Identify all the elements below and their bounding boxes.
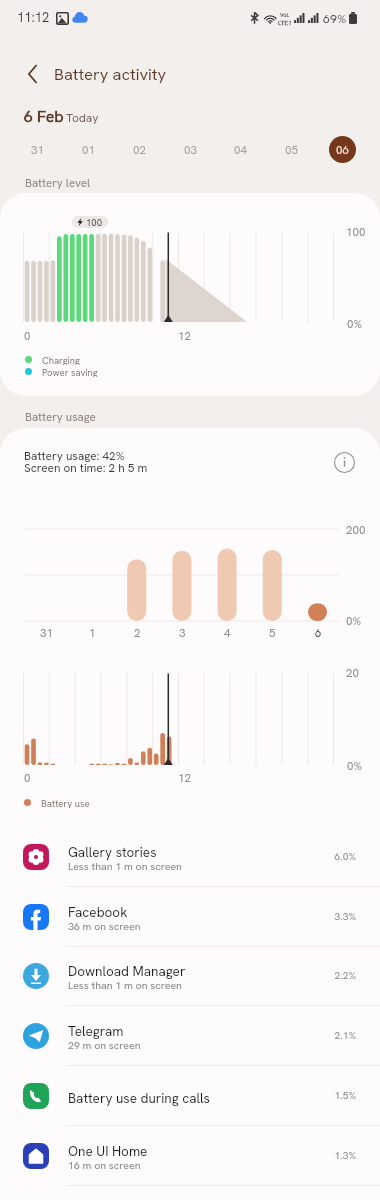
staticText: 04 — [234, 142, 247, 157]
staticText: Less than 1 m on screen — [68, 978, 182, 992]
button[interactable]: Telegram — [0, 1006, 380, 1066]
staticText: 11:12 — [17, 9, 50, 26]
staticText: Download Manager — [68, 962, 186, 980]
staticText: 1 — [89, 625, 96, 638]
staticText: Less than 1 m on screen — [68, 859, 182, 873]
staticText: 0% — [347, 316, 363, 331]
staticText: 3.3% — [334, 910, 356, 923]
button[interactable]: 31 — [18, 131, 56, 167]
staticText: Charging — [42, 354, 80, 365]
staticText: 0% — [347, 758, 363, 773]
staticText: Battery activity — [54, 63, 167, 84]
staticText: 31 — [31, 142, 44, 157]
staticText: 1.3% — [334, 1149, 356, 1162]
staticText: Facebook — [68, 903, 128, 921]
staticText: 1.5% — [334, 1089, 356, 1102]
staticText: 0 — [24, 770, 31, 785]
staticText: 6.0% — [334, 850, 356, 863]
staticText: 05 — [285, 142, 298, 157]
staticText: 5 — [269, 625, 276, 638]
button[interactable]: 01 — [69, 131, 107, 167]
staticText: 100 — [86, 216, 102, 228]
staticText: 6 — [315, 625, 322, 638]
button[interactable]: One UI Home — [0, 1126, 380, 1186]
button[interactable]: Battery use during calls — [0, 1066, 380, 1126]
button[interactable]: Facebook — [0, 887, 380, 947]
staticText: 0% — [346, 613, 362, 628]
staticText: 06 — [336, 142, 349, 157]
staticText: 100 — [346, 224, 366, 239]
staticText: 02 — [133, 142, 146, 157]
staticText: Battery use during calls — [68, 1089, 210, 1107]
staticText: 3 — [179, 625, 186, 638]
staticText: Today — [66, 110, 99, 126]
button[interactable]: Back — [14, 58, 50, 90]
button[interactable]: Gallery stories — [0, 827, 380, 887]
button[interactable]: Samsung Health — [0, 1185, 380, 1200]
button[interactable]: Download Manager — [0, 946, 380, 1006]
staticText: Power saving — [42, 366, 98, 377]
staticText: 29 m on screen — [68, 1038, 141, 1052]
staticText: 12 — [178, 770, 191, 785]
staticText: Battery level — [25, 175, 91, 190]
staticText: 200 — [346, 522, 366, 537]
button[interactable]: 05 — [272, 131, 310, 167]
button[interactable]: 04 — [221, 131, 259, 167]
staticText: Gallery stories — [68, 843, 157, 861]
button[interactable]: 03 — [171, 131, 209, 167]
staticText: 03 — [184, 142, 197, 157]
staticText: Telegram — [68, 1022, 124, 1040]
staticText: 0 — [24, 328, 31, 343]
staticText: 69% — [323, 10, 347, 26]
staticText: Battery usage: 42% — [24, 448, 125, 463]
staticText: One UI Home — [68, 1142, 148, 1160]
staticText: 36 m on screen — [68, 919, 141, 933]
staticText: 2.1% — [334, 1029, 356, 1042]
staticText: 16 m on screen — [68, 1158, 141, 1172]
staticText: 2 — [134, 625, 141, 638]
staticText: 2.2% — [334, 969, 356, 982]
staticText: 4 — [224, 625, 231, 638]
staticText: Screen on time: 2 h 5 m — [24, 460, 148, 475]
button[interactable]: 02 — [120, 131, 158, 167]
staticText: 12 — [178, 328, 191, 343]
staticText: LTE1 — [278, 18, 292, 26]
button[interactable]: 06 — [323, 131, 361, 167]
staticText: 31 — [40, 625, 53, 638]
button[interactable]: Info — [333, 451, 356, 474]
staticText: Battery usage — [25, 409, 96, 424]
staticText: 01 — [82, 142, 95, 157]
staticText: 20 — [346, 665, 359, 680]
staticText: 6 Feb — [24, 106, 64, 127]
staticText: Battery use — [41, 797, 90, 808]
staticText: VoL — [280, 11, 290, 18]
